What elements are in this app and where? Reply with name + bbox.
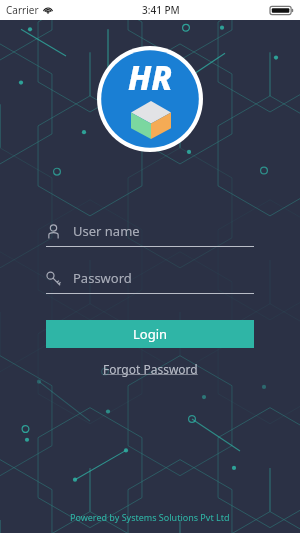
staticText: HR — [128, 55, 173, 100]
button[interactable]: Forgot Password — [95, 358, 206, 380]
staticText: Carrier — [6, 3, 39, 17]
staticText: User name — [73, 222, 140, 240]
staticText: Password — [73, 269, 132, 287]
other: Password — [46, 271, 61, 286]
button[interactable]: User name — [46, 220, 254, 242]
button[interactable]: Login — [46, 320, 254, 348]
staticText: 3:41 PM — [142, 3, 180, 17]
other: User name — [46, 224, 61, 239]
staticText: Login — [133, 325, 168, 343]
staticText: Powered by Systems Solutions Pvt Ltd — [70, 511, 230, 523]
staticText: Forgot Password — [103, 361, 198, 377]
button[interactable]: Password — [46, 267, 254, 289]
